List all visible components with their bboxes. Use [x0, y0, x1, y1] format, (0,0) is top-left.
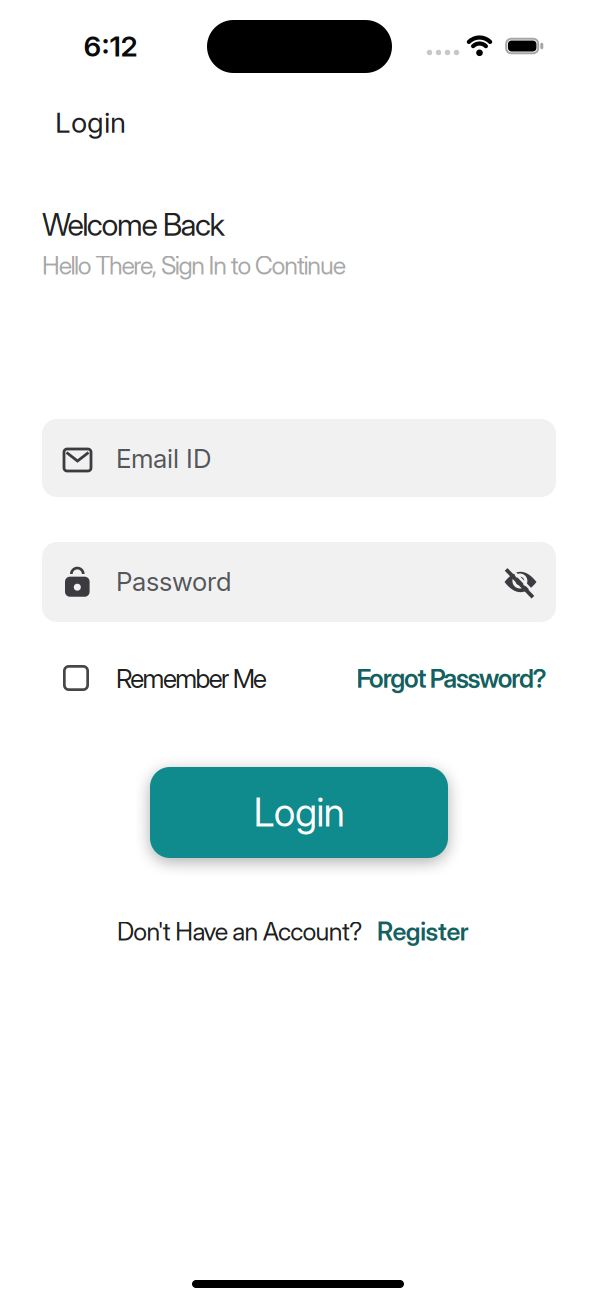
staticText: Hello There, Sign In to Continue — [42, 250, 346, 280]
staticText: Remember Me — [116, 663, 267, 694]
staticText: Login — [254, 789, 344, 836]
button[interactable]: Forgot Password? — [356, 663, 556, 694]
staticText: Register — [377, 916, 469, 947]
button[interactable]: Login — [150, 767, 448, 858]
staticText: 6:12 — [83, 29, 137, 63]
staticText: Forgot Password? — [356, 663, 546, 694]
staticText: Email ID — [116, 443, 212, 474]
button[interactable]: Show password — [500, 562, 540, 602]
staticText: Welcome Back — [42, 206, 225, 243]
staticText: Login — [55, 106, 126, 140]
button[interactable]: Email ID — [42, 419, 556, 497]
button[interactable]: Password — [42, 542, 556, 622]
staticText: Password — [116, 566, 232, 597]
button[interactable]: Remember Me — [63, 664, 276, 692]
button[interactable]: Register — [377, 916, 477, 947]
staticText: Don't Have an Account? — [117, 916, 362, 947]
